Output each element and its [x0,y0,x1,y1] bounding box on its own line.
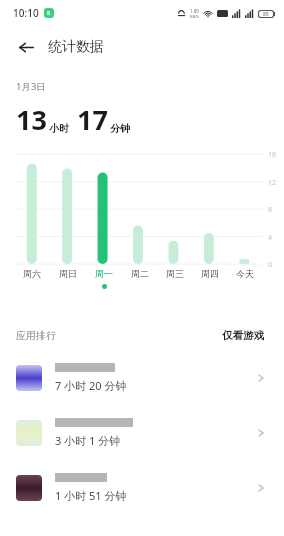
button[interactable]: 今天 [227,268,262,279]
staticText: 今天 [236,268,254,279]
button[interactable]: 3 小时 1 分钟 [0,405,284,460]
staticText: 1 小时 51 分钟 [55,488,127,503]
staticText: 85 [263,11,269,17]
staticText: 8 [47,9,51,17]
other: Details [254,481,268,495]
button[interactable]: 周四 [192,268,227,279]
staticText: 12 [268,178,277,188]
button[interactable]: 周日 [50,268,86,279]
button[interactable]: 周一 [86,268,122,289]
staticText: 周六 [23,268,41,279]
staticText: 1月3日 [16,80,46,93]
staticText: 10:10 [13,6,39,20]
staticText: 周三 [166,268,184,279]
staticText: 13 [16,101,47,138]
button[interactable]: Back [13,34,39,60]
button[interactable]: 周二 [122,268,157,279]
staticText: 小时 [49,122,69,135]
staticText: 周四 [201,268,219,279]
button[interactable]: 周三 [157,268,192,279]
other: Details [254,371,268,385]
staticText: 1.00 [190,8,199,14]
staticText: 周日 [59,268,77,279]
staticText: 统计数据 [48,38,104,56]
button[interactable]: 仅看游戏 [218,325,268,346]
staticText: 3 小时 1 分钟 [55,433,121,448]
staticText: KB/S [190,14,199,19]
staticText: 4 [268,233,273,243]
staticText: 16 [268,150,277,160]
staticText: 0 [268,260,273,270]
button[interactable]: 7 小时 20 分钟 [0,350,284,405]
staticText: 7 小时 20 分钟 [55,378,127,393]
staticText: 8 [268,205,273,215]
button[interactable]: 周六 [14,268,50,279]
staticText: 仅看游戏 [222,329,264,342]
other: Details [254,426,268,440]
staticText: 应用排行 [16,329,56,342]
staticText: 周一 [95,268,113,279]
staticText: 分钟 [110,122,130,135]
staticText: 17 [77,101,108,138]
staticText: 周二 [131,268,149,279]
button[interactable]: 1 小时 51 分钟 [0,460,284,515]
